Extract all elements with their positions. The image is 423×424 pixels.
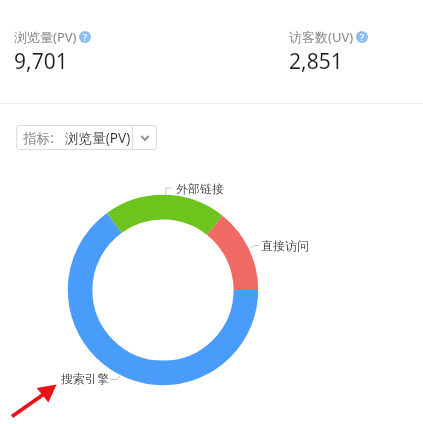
staticText: 直接访问	[261, 238, 309, 253]
staticText: 搜索引擎	[61, 371, 109, 386]
staticText: 访客数(UV)	[289, 28, 354, 46]
staticText: 指标:	[23, 128, 54, 147]
button[interactable]: Help	[79, 31, 91, 43]
button[interactable]: 搜索引擎	[61, 371, 109, 386]
staticText: 外部链接	[176, 181, 224, 196]
button[interactable]: 外部链接	[176, 181, 224, 196]
staticText: ?	[360, 31, 364, 43]
staticText: 浏览量(PV)	[65, 128, 131, 147]
button[interactable]: Help	[356, 31, 368, 43]
staticText: 9,701	[14, 47, 68, 76]
button[interactable]: 指标:	[16, 125, 157, 150]
button[interactable]: 直接访问	[261, 238, 309, 253]
staticText: 2,851	[289, 47, 343, 76]
staticText: ?	[83, 31, 87, 43]
staticText: 浏览量(PV)	[14, 28, 77, 46]
